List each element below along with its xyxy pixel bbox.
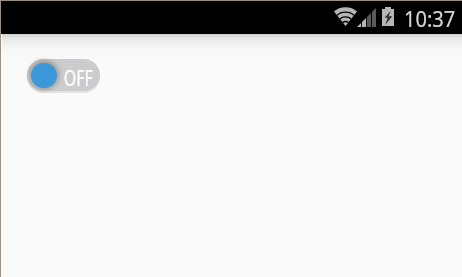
other: Wi-Fi signal [334, 8, 357, 26]
other: Battery charging [382, 7, 394, 26]
staticText: 10:37 [404, 5, 456, 34]
other: Mobile signal strength [357, 8, 376, 27]
button[interactable]: Toggle OFF [27, 59, 100, 93]
staticText: OFF [64, 64, 93, 93]
